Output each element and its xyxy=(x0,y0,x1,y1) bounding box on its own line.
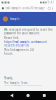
button[interactable]: Home xyxy=(24,91,32,100)
staticText: hours. xyxy=(4,52,13,55)
staticText: Example xyxy=(10,17,20,21)
staticText: This link expires in 24 xyxy=(4,48,34,52)
button[interactable]: Back xyxy=(8,91,16,100)
button[interactable]: More options xyxy=(50,6,55,11)
staticText: https://mail.example.com/account xyxy=(4,40,47,44)
staticText: /reset?t=8f2a91c4 xyxy=(4,44,29,47)
button[interactable]: Recent apps xyxy=(40,91,48,100)
staticText: 9:41 xyxy=(47,1,54,4)
staticText: mail.example.com/u/0/message xyxy=(5,6,45,10)
staticText: You received this email because you have… xyxy=(4,85,41,86)
staticText: We received a request to reset the xyxy=(4,28,53,31)
staticText: Thanks, xyxy=(4,76,13,80)
staticText: password for your account. xyxy=(4,31,40,35)
staticText: Reset link xyxy=(4,36,18,40)
button[interactable]: Address bar xyxy=(2,6,45,10)
button[interactable]: Reload page xyxy=(48,7,50,10)
staticText: The Example Team xyxy=(4,81,27,85)
